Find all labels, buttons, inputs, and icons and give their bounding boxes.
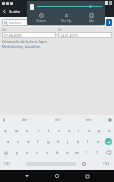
staticText: f — [37, 139, 39, 145]
staticText: b — [56, 150, 59, 156]
button[interactable]: n — [62, 147, 72, 158]
button[interactable]: l — [83, 136, 93, 147]
button[interactable] — [89, 5, 92, 8]
staticText: Suchen — [9, 20, 22, 25]
staticText: o — [88, 128, 91, 134]
button[interactable]: ? — [92, 147, 102, 158]
staticText: j — [67, 139, 69, 145]
staticText: Bis — [58, 28, 62, 32]
button[interactable]: i — [74, 125, 84, 136]
button[interactable]: k — [73, 136, 83, 147]
button[interactable]: v — [42, 147, 52, 158]
button[interactable]: b — [52, 147, 62, 158]
button[interactable]: 14.01.2019 — [58, 32, 112, 38]
button[interactable]: o — [84, 125, 94, 136]
button[interactable]: Alle — [80, 12, 102, 23]
button[interactable]: ?123 — [99, 158, 114, 169]
staticText: a — [7, 139, 10, 145]
button[interactable]: ich — [41, 115, 73, 124]
staticText: l — [87, 139, 89, 145]
staticText: s — [17, 139, 20, 145]
button[interactable]: m — [72, 147, 82, 158]
button[interactable]: a — [4, 136, 13, 147]
button[interactable]: s — [13, 136, 23, 147]
staticText: Stumm — [36, 19, 46, 23]
staticText: ?123 — [103, 162, 110, 166]
staticText: ü — [108, 128, 111, 134]
staticText: Nur Klg. — [61, 19, 72, 23]
button[interactable]: h — [53, 136, 63, 147]
staticText: Zeitraum für die Suche in Tagen — [2, 40, 47, 44]
button[interactable]: Volume — [30, 4, 34, 10]
staticText: n — [66, 150, 69, 156]
staticText: c — [36, 150, 39, 156]
button[interactable]: mit — [73, 115, 105, 124]
button[interactable]: Recents — [82, 171, 92, 181]
button[interactable]: Back — [2, 9, 21, 14]
staticText: x — [26, 150, 29, 156]
staticText: ich — [55, 117, 60, 122]
button[interactable]: d — [23, 136, 33, 147]
button[interactable]: die — [8, 115, 41, 124]
button[interactable]: y — [12, 147, 22, 158]
staticText: , — [18, 161, 20, 167]
staticText: m — [75, 150, 79, 156]
staticText: g — [47, 139, 50, 145]
staticText: y — [16, 150, 19, 156]
button[interactable]: Home — [52, 171, 62, 181]
staticText: Alle — [89, 19, 94, 23]
button[interactable]: Settings — [105, 115, 114, 124]
button[interactable]: u — [64, 125, 74, 136]
staticText: h — [57, 139, 60, 145]
button[interactable]: j — [63, 136, 73, 147]
staticText: q — [4, 128, 7, 134]
button[interactable]: ! — [82, 147, 92, 158]
staticText: i — [78, 128, 80, 134]
button[interactable]: r — [33, 125, 44, 136]
button[interactable]: w — [11, 125, 22, 136]
staticText: ö — [97, 139, 100, 145]
button[interactable]: t — [44, 125, 54, 136]
staticText: v — [46, 150, 49, 156]
button[interactable]: Backspace — [102, 147, 114, 158]
staticText: ?123 — [4, 162, 11, 166]
button[interactable]: Stumm — [30, 12, 52, 23]
staticText: p — [98, 128, 101, 134]
staticText: . — [93, 161, 95, 167]
button[interactable]: x — [22, 147, 32, 158]
staticText: die — [22, 117, 27, 122]
button[interactable]: Auswählen — [25, 45, 41, 49]
staticText: u — [68, 128, 71, 134]
button[interactable]: Enter — [103, 136, 113, 147]
staticText: Suche — [9, 9, 21, 14]
button[interactable]: ö — [93, 136, 103, 147]
staticText: 01.08.2009 — [4, 33, 22, 38]
button[interactable]: z — [54, 125, 64, 136]
button[interactable]: p — [94, 125, 104, 136]
button[interactable]: More suggestions — [0, 115, 8, 124]
button[interactable]: 01.08.2009 — [2, 32, 56, 38]
button[interactable]: q — [0, 125, 11, 136]
button[interactable]: Shift — [0, 147, 12, 158]
staticText: z — [58, 128, 60, 134]
button[interactable]: Back — [22, 171, 32, 181]
button[interactable]: e — [22, 125, 33, 136]
staticText: mit — [86, 117, 92, 122]
button[interactable]: c — [32, 147, 42, 158]
button[interactable]: , — [14, 158, 24, 169]
staticText: r — [38, 128, 40, 134]
button[interactable]: Nur Klg. — [55, 12, 77, 23]
button[interactable]: Emoji — [78, 158, 89, 169]
button[interactable]: ü — [104, 125, 114, 136]
staticText: Von — [2, 28, 7, 32]
button[interactable]: Suchen — [2, 19, 104, 26]
staticText: ? — [96, 150, 98, 156]
button[interactable]: ?123 — [0, 158, 14, 169]
button[interactable]: g — [43, 136, 53, 147]
button[interactable]: Mindestbetrag — [2, 45, 23, 49]
staticText: 14.01.2019 — [60, 33, 78, 38]
button[interactable]: Filter — [106, 19, 112, 26]
button[interactable]: f — [33, 136, 43, 147]
